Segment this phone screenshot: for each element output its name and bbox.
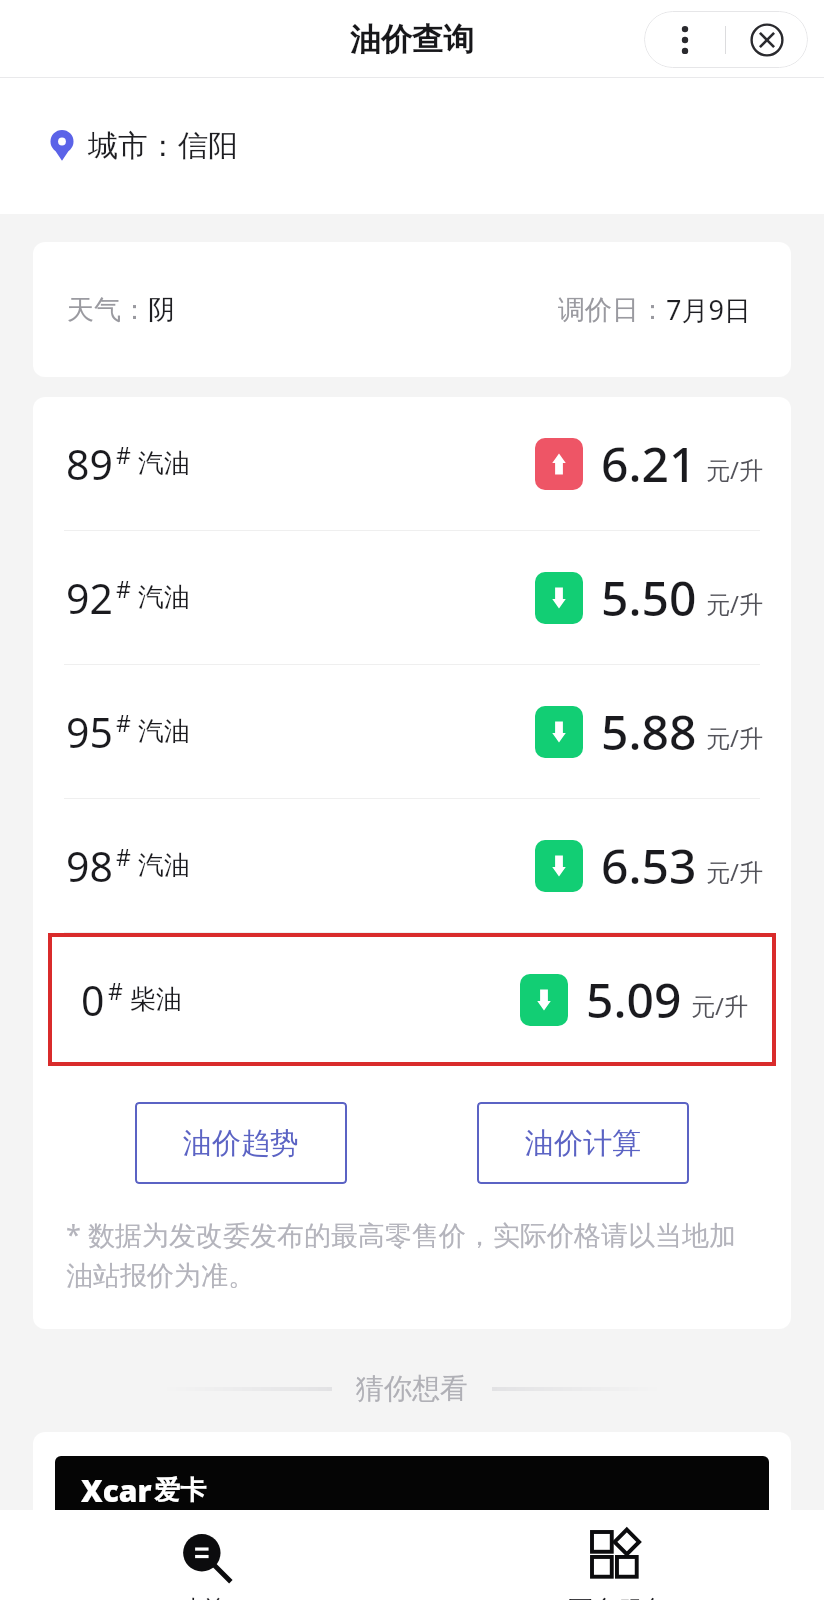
button[interactable]: More options (644, 11, 725, 68)
button[interactable]: 0 (48, 933, 776, 1066)
button[interactable]: 89 (33, 397, 791, 530)
button[interactable]: 95 (33, 665, 791, 798)
staticText: 89 (66, 436, 113, 492)
staticText: 柴油 (130, 983, 182, 1016)
staticText: 汽油 (138, 715, 190, 748)
button[interactable]: 油价趋势 (135, 1102, 347, 1184)
staticText: 92 (66, 570, 113, 626)
staticText: 5.50 (601, 565, 697, 630)
staticText: 油价查询 (350, 20, 474, 59)
staticText: 0 (81, 972, 105, 1028)
staticText: 油价计算 (525, 1125, 641, 1162)
staticText: 汽油 (138, 447, 190, 480)
staticText: 油价趋势 (183, 1125, 299, 1162)
button[interactable]: 98 (33, 799, 791, 932)
staticText: 元/升 (691, 989, 748, 1022)
staticText: 98 (66, 838, 113, 894)
staticText: 元/升 (706, 855, 763, 888)
button[interactable]: 更多服务 (412, 1520, 824, 1600)
staticText: 5.88 (601, 699, 697, 764)
staticText: 调价日： (558, 293, 666, 327)
staticText: 爱卡 (154, 1474, 206, 1507)
staticText: 5.09 (586, 967, 682, 1032)
staticText: 6.21 (601, 431, 697, 496)
staticText: 天气： (67, 293, 148, 327)
staticText: 更多服务 (568, 1594, 668, 1600)
button[interactable]: 城市：信阳 (0, 78, 824, 214)
staticText: 元/升 (706, 453, 763, 486)
button[interactable]: 92 (33, 531, 791, 664)
button[interactable]: 油价计算 (477, 1102, 689, 1184)
staticText: # (116, 439, 131, 470)
staticText: 汽油 (138, 581, 190, 614)
staticText: # (116, 841, 131, 872)
staticText: 6.53 (601, 833, 697, 898)
staticText: # (108, 975, 123, 1006)
staticText: 查询 (181, 1594, 231, 1600)
button[interactable]: 查询 (0, 1520, 412, 1600)
staticText: 城市：信阳 (88, 127, 238, 165)
staticText: 元/升 (706, 587, 763, 620)
staticText: # (116, 573, 131, 604)
staticText: 猜你想看 (356, 1371, 468, 1406)
staticText: 95 (66, 704, 113, 760)
staticText: 汽油 (138, 849, 190, 882)
button[interactable]: Xcar (55, 1456, 769, 1510)
staticText: 7月9日 (666, 291, 751, 328)
button[interactable]: Close (726, 11, 808, 68)
staticText: 元/升 (706, 721, 763, 754)
staticText: # (116, 707, 131, 738)
staticText: * 数据为发改委发布的最高零售价，实际价格请以当地加油站报价为准。 (66, 1216, 755, 1293)
staticText: 阴 (148, 293, 175, 327)
staticText: Xcar (81, 1470, 152, 1510)
